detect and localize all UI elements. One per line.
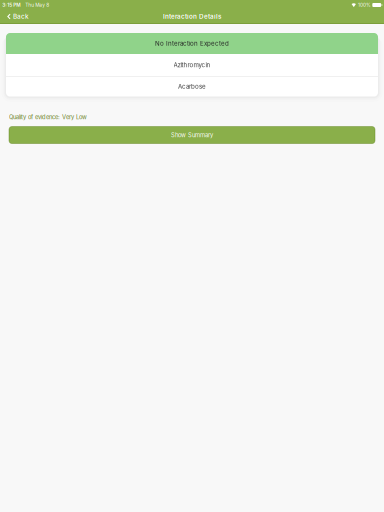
- button[interactable]: Back: [0, 10, 35, 23]
- staticText: 3:15 PM: [2, 2, 20, 8]
- staticText: Back: [13, 13, 29, 20]
- staticText: Thu May 8: [25, 2, 49, 8]
- staticText: Show Summary: [171, 131, 213, 139]
- staticText: Interaction Details: [163, 13, 221, 20]
- staticText: Acarbose: [178, 83, 206, 90]
- staticText: 100%: [358, 2, 371, 8]
- button[interactable]: Show Summary: [9, 126, 375, 143]
- button[interactable]: Acarbose: [6, 77, 378, 97]
- staticText: Azithromycin: [173, 61, 210, 69]
- staticText: Quality of evidence: Very Low: [9, 114, 87, 120]
- staticText: No Interaction Expected: [155, 40, 229, 47]
- button[interactable]: Azithromycin: [6, 54, 378, 76]
